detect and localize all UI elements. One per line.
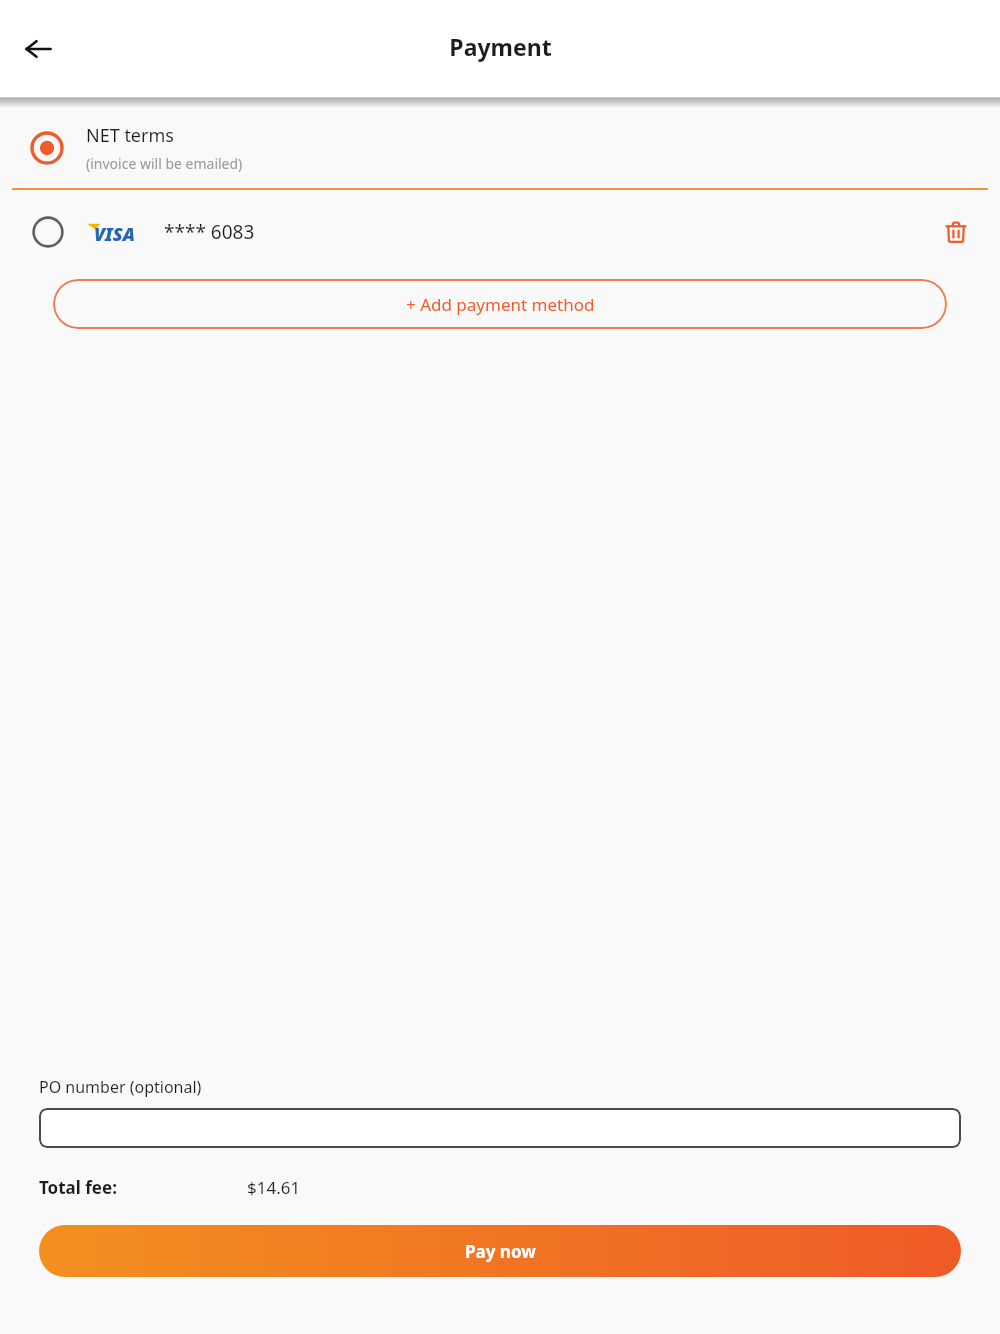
button[interactable]: VISA: [0, 210, 1000, 254]
button[interactable]: NET terms: [0, 123, 1000, 173]
staticText: $14.61: [247, 1176, 301, 1199]
staticText: + Add payment method: [406, 293, 595, 316]
staticText: (invoice will be emailed): [86, 154, 243, 173]
staticText: **** 6083: [164, 219, 255, 245]
staticText: PO number (optional): [39, 1076, 202, 1098]
staticText: NET terms: [86, 123, 174, 148]
button[interactable]: Pay now: [39, 1225, 961, 1277]
staticText: Payment: [449, 31, 552, 62]
staticText: Total fee:: [39, 1176, 117, 1199]
button[interactable]: Delete card: [934, 210, 978, 254]
staticText: VISA: [94, 222, 135, 246]
staticText: Pay now: [465, 1240, 536, 1263]
button[interactable]: Back: [14, 25, 62, 73]
button[interactable]: + Add payment method: [53, 279, 947, 329]
button[interactable]: [39, 1108, 961, 1148]
